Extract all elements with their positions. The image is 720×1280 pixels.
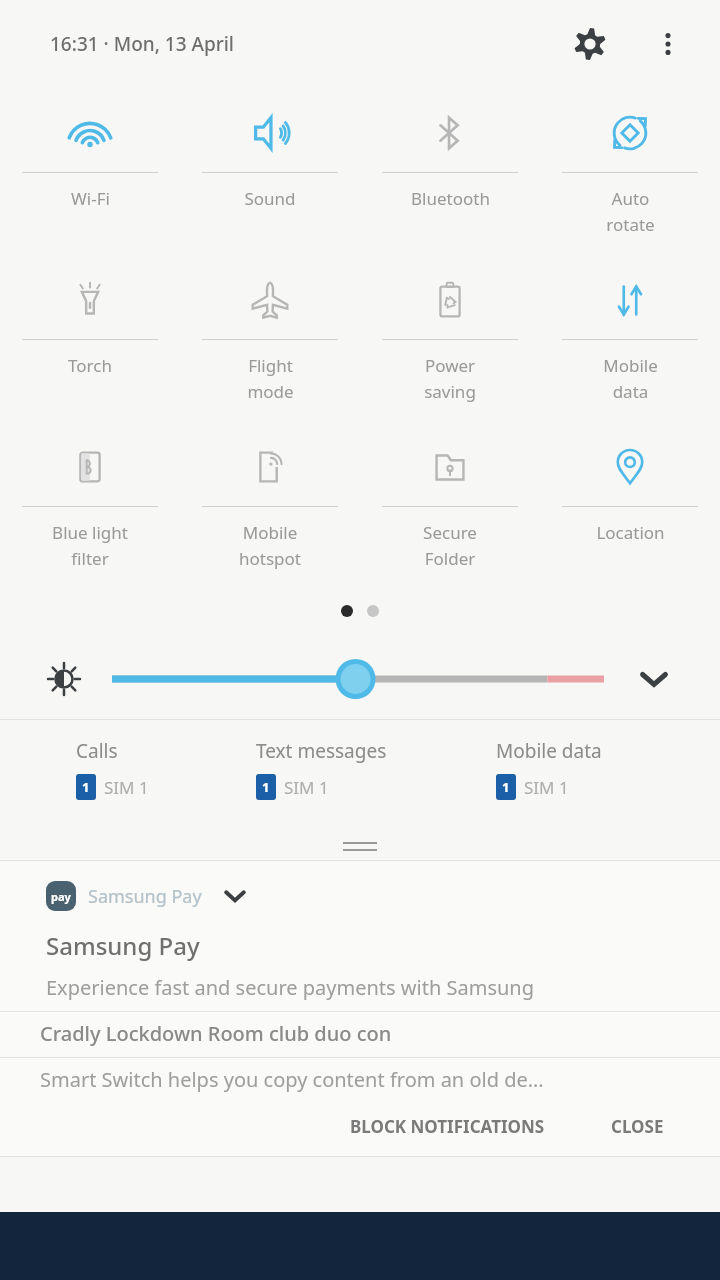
button[interactable]: Sound [180, 94, 360, 261]
button[interactable]: Text messages [240, 734, 480, 832]
staticText: Wi-Fi [71, 187, 110, 210]
staticText: Text messages [256, 738, 387, 764]
staticText: 1 [502, 778, 510, 796]
staticText: Secure Folder [423, 521, 477, 570]
staticText: pay [51, 889, 71, 904]
staticText: SIM 1 [524, 776, 569, 799]
button[interactable]: More options [644, 20, 692, 68]
staticText: SIM 1 [104, 776, 149, 799]
staticText: 1 [262, 778, 270, 796]
button[interactable]: Settings [562, 16, 618, 72]
staticText: Mobile data [496, 738, 602, 764]
staticText: SIM 1 [284, 776, 329, 799]
staticText: BLOCK NOTIFICATIONS [350, 1115, 545, 1138]
staticText: Blue light filter [52, 521, 128, 570]
button[interactable]: Mobile hotspot [180, 428, 360, 595]
staticText: Sound [244, 187, 296, 210]
button[interactable]: Bluetooth [360, 94, 540, 261]
button[interactable]: Torch [0, 261, 180, 428]
button[interactable]: Expand notification [218, 879, 252, 913]
staticText: Experience fast and secure payments with… [46, 974, 534, 1001]
staticText: Flight mode [247, 354, 294, 403]
button[interactable]: Blue light filter [0, 428, 180, 595]
button[interactable]: Mobile data [540, 261, 720, 428]
button[interactable]: Flight mode [180, 261, 360, 428]
button[interactable]: Power saving [360, 261, 540, 428]
button[interactable]: BLOCK NOTIFICATIONS [334, 1105, 561, 1148]
staticText: Auto rotate [606, 187, 655, 236]
button[interactable]: CLOSE [595, 1105, 680, 1148]
staticText: Location [596, 521, 665, 544]
button[interactable]: Wi-Fi [0, 94, 180, 261]
staticText: CLOSE [611, 1115, 664, 1138]
staticText: Samsung Pay [88, 884, 202, 909]
button[interactable] [112, 655, 604, 703]
staticText: Mobile hotspot [239, 521, 301, 570]
staticText: Power saving [424, 354, 476, 403]
staticText: Bluetooth [411, 187, 490, 210]
button[interactable]: Mobile data [480, 734, 720, 832]
button[interactable]: Auto brightness [40, 655, 88, 703]
button[interactable]: Location [540, 428, 720, 595]
staticText: 1 [82, 778, 90, 796]
staticText: Calls [76, 738, 118, 764]
button[interactable]: pay [46, 879, 720, 913]
button[interactable]: Auto rotate [540, 94, 720, 261]
staticText: 16:31 · Mon, 13 April [50, 31, 234, 57]
staticText: Cradly Lockdown Room club duo con [40, 1020, 392, 1047]
button[interactable]: Secure Folder [360, 428, 540, 595]
staticText: Torch [68, 354, 112, 377]
staticText: Samsung Pay [46, 929, 200, 962]
button[interactable]: Expand [628, 653, 680, 705]
staticText: Smart Switch helps you copy content from… [40, 1066, 544, 1093]
button[interactable]: Calls [0, 734, 240, 832]
staticText: Mobile data [603, 354, 658, 403]
